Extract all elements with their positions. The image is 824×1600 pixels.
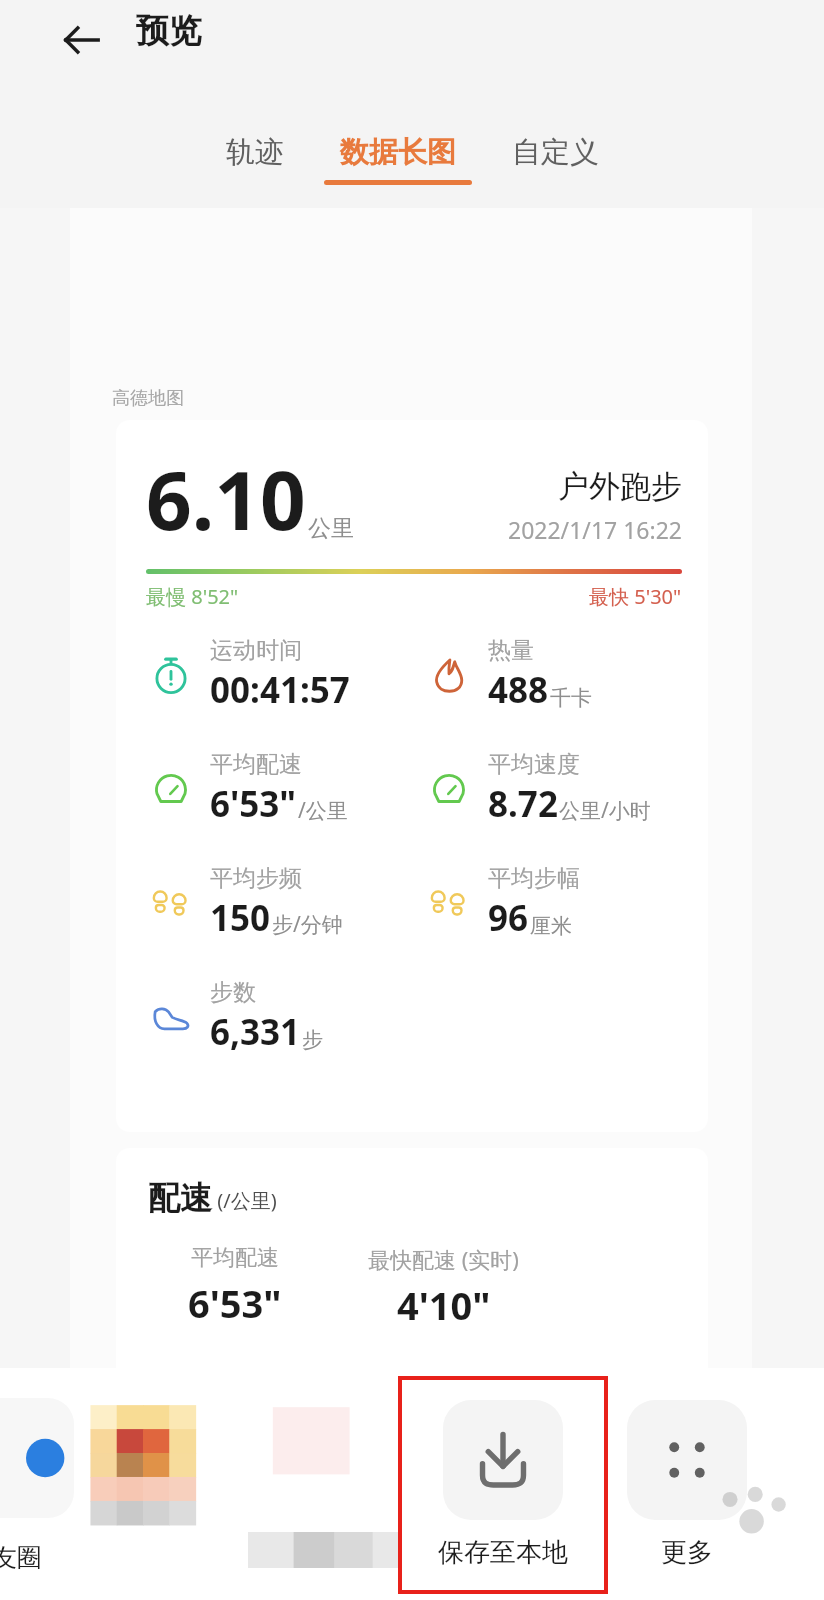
staticText: 千卡 (550, 685, 592, 711)
staticText: 6'53" (210, 780, 297, 828)
button[interactable]: 配速 (116, 1148, 708, 1398)
staticText: 150 (210, 894, 271, 942)
staticText: 6,331 (210, 1008, 301, 1056)
staticText: 6.10 (146, 444, 306, 553)
staticText: 步数 (210, 978, 256, 1007)
staticText: 自定义 (512, 134, 599, 171)
staticText: 6'53" (188, 1277, 282, 1329)
staticText: 数据长图 (340, 134, 456, 171)
staticText: 最慢 8'52" (146, 583, 239, 610)
staticText: /公里 (298, 796, 348, 825)
staticText: 8.72 (488, 780, 558, 828)
button[interactable]: 分享 (268, 1400, 388, 1520)
staticText: 平均配速 (191, 1244, 279, 1272)
staticText: 96 (488, 894, 529, 942)
staticText: 步 (302, 1027, 323, 1053)
staticText: 平均步频 (210, 864, 302, 893)
staticText: 轨迹 (226, 134, 284, 171)
staticText: 00:41:57 (210, 666, 350, 714)
button[interactable]: 6.10 (116, 420, 708, 1132)
staticText: 友圈 (0, 1542, 42, 1573)
button[interactable]: Back (52, 10, 112, 70)
button[interactable]: 分享 (70, 1392, 216, 1538)
button[interactable]: 朋友圈 (0, 1398, 74, 1518)
staticText: 平均配速 (210, 750, 302, 779)
staticText: 热量 (488, 636, 534, 665)
staticText: 保存至本地 (438, 1536, 568, 1569)
staticText: 平均速度 (488, 750, 580, 779)
staticText: 最快配速 (实时) (368, 1244, 519, 1274)
staticText: 更多 (661, 1536, 713, 1569)
button[interactable]: 自定义 (512, 134, 599, 180)
staticText: 4'10" (397, 1279, 491, 1331)
staticText: 运动时间 (210, 636, 302, 665)
staticText: 488 (488, 666, 549, 714)
staticText: 高德地图 (112, 387, 184, 410)
staticText: 步/分钟 (272, 910, 343, 939)
staticText: 平均步幅 (488, 864, 580, 893)
button[interactable]: 保存至本地 (400, 1378, 606, 1592)
staticText: 配速 (148, 1178, 212, 1218)
button[interactable]: 数据长图 (324, 134, 472, 185)
staticText: 户外跑步 (558, 467, 682, 506)
staticText: 公里/小时 (559, 796, 651, 825)
staticText: 预览 (136, 10, 202, 52)
staticText: (/公里) (212, 1187, 277, 1214)
button[interactable]: 更多 (620, 1400, 754, 1590)
staticText: 2022/1/17 16:22 (508, 514, 682, 545)
staticText: 公里 (308, 514, 354, 543)
staticText: 最快 5'30" (589, 583, 682, 610)
button[interactable]: 轨迹 (226, 134, 284, 180)
staticText: 厘米 (530, 913, 572, 939)
